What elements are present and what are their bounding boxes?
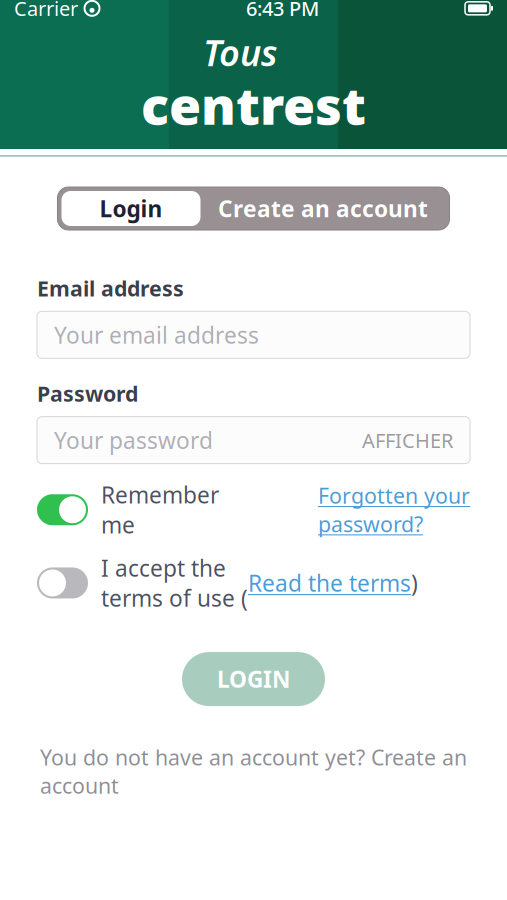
staticText: You do not have an account yet? Create a… [40, 743, 467, 800]
staticText: Email address [37, 274, 184, 302]
staticText: Read the terms [248, 568, 411, 598]
staticText: Create an account [218, 193, 428, 223]
button[interactable]: Forgotten your password? [318, 481, 470, 538]
staticText: Forgotten your password? [318, 481, 470, 538]
staticText: LOGIN [217, 664, 290, 694]
staticText: AFFICHER [362, 427, 453, 453]
staticText: I accept the terms of use ( [101, 553, 248, 613]
staticText: Remember me [101, 480, 219, 540]
button[interactable]: Read the terms [248, 568, 411, 598]
staticText: centrest [141, 70, 366, 139]
staticText: Carrier [14, 0, 78, 22]
staticText: Login [99, 193, 162, 223]
staticText: Your password [54, 425, 213, 455]
staticText: Password [37, 379, 138, 408]
button[interactable]: Remember me [37, 480, 219, 540]
button[interactable]: I accept the terms of use ( [37, 553, 248, 613]
button[interactable]: Your email address [37, 311, 470, 358]
button[interactable]: LOGIN [182, 652, 325, 706]
staticText: Your email address [54, 320, 259, 350]
button[interactable]: Login [61, 191, 200, 226]
staticText: 6:43 PM [246, 0, 319, 22]
staticText: ) [411, 568, 418, 598]
button[interactable]: You do not have an account yet? Create a… [37, 743, 470, 800]
button[interactable]: AFFICHER [362, 427, 453, 453]
button[interactable]: Create an account [200, 191, 445, 226]
staticText: Tous [203, 28, 278, 76]
